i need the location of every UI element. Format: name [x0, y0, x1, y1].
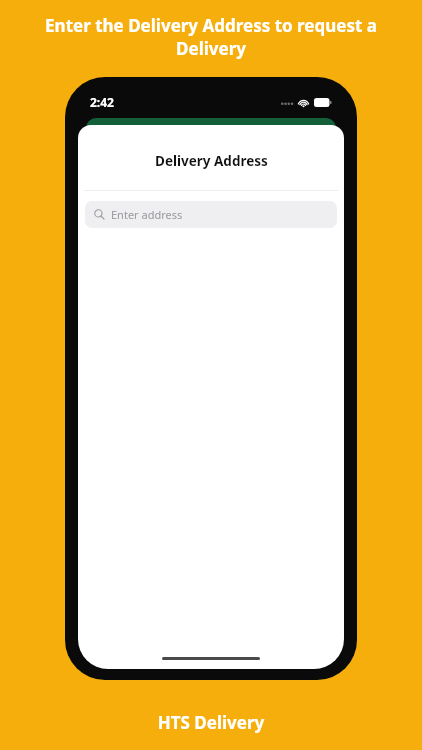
staticText: Enter the Delivery Address to request a … [26, 14, 396, 60]
staticText: 2:42 [90, 94, 114, 110]
button[interactable]: Enter address [85, 201, 337, 228]
staticText: Enter address [111, 207, 183, 222]
staticText: Delivery Address [155, 152, 268, 170]
staticText: HTS Delivery [0, 711, 422, 734]
